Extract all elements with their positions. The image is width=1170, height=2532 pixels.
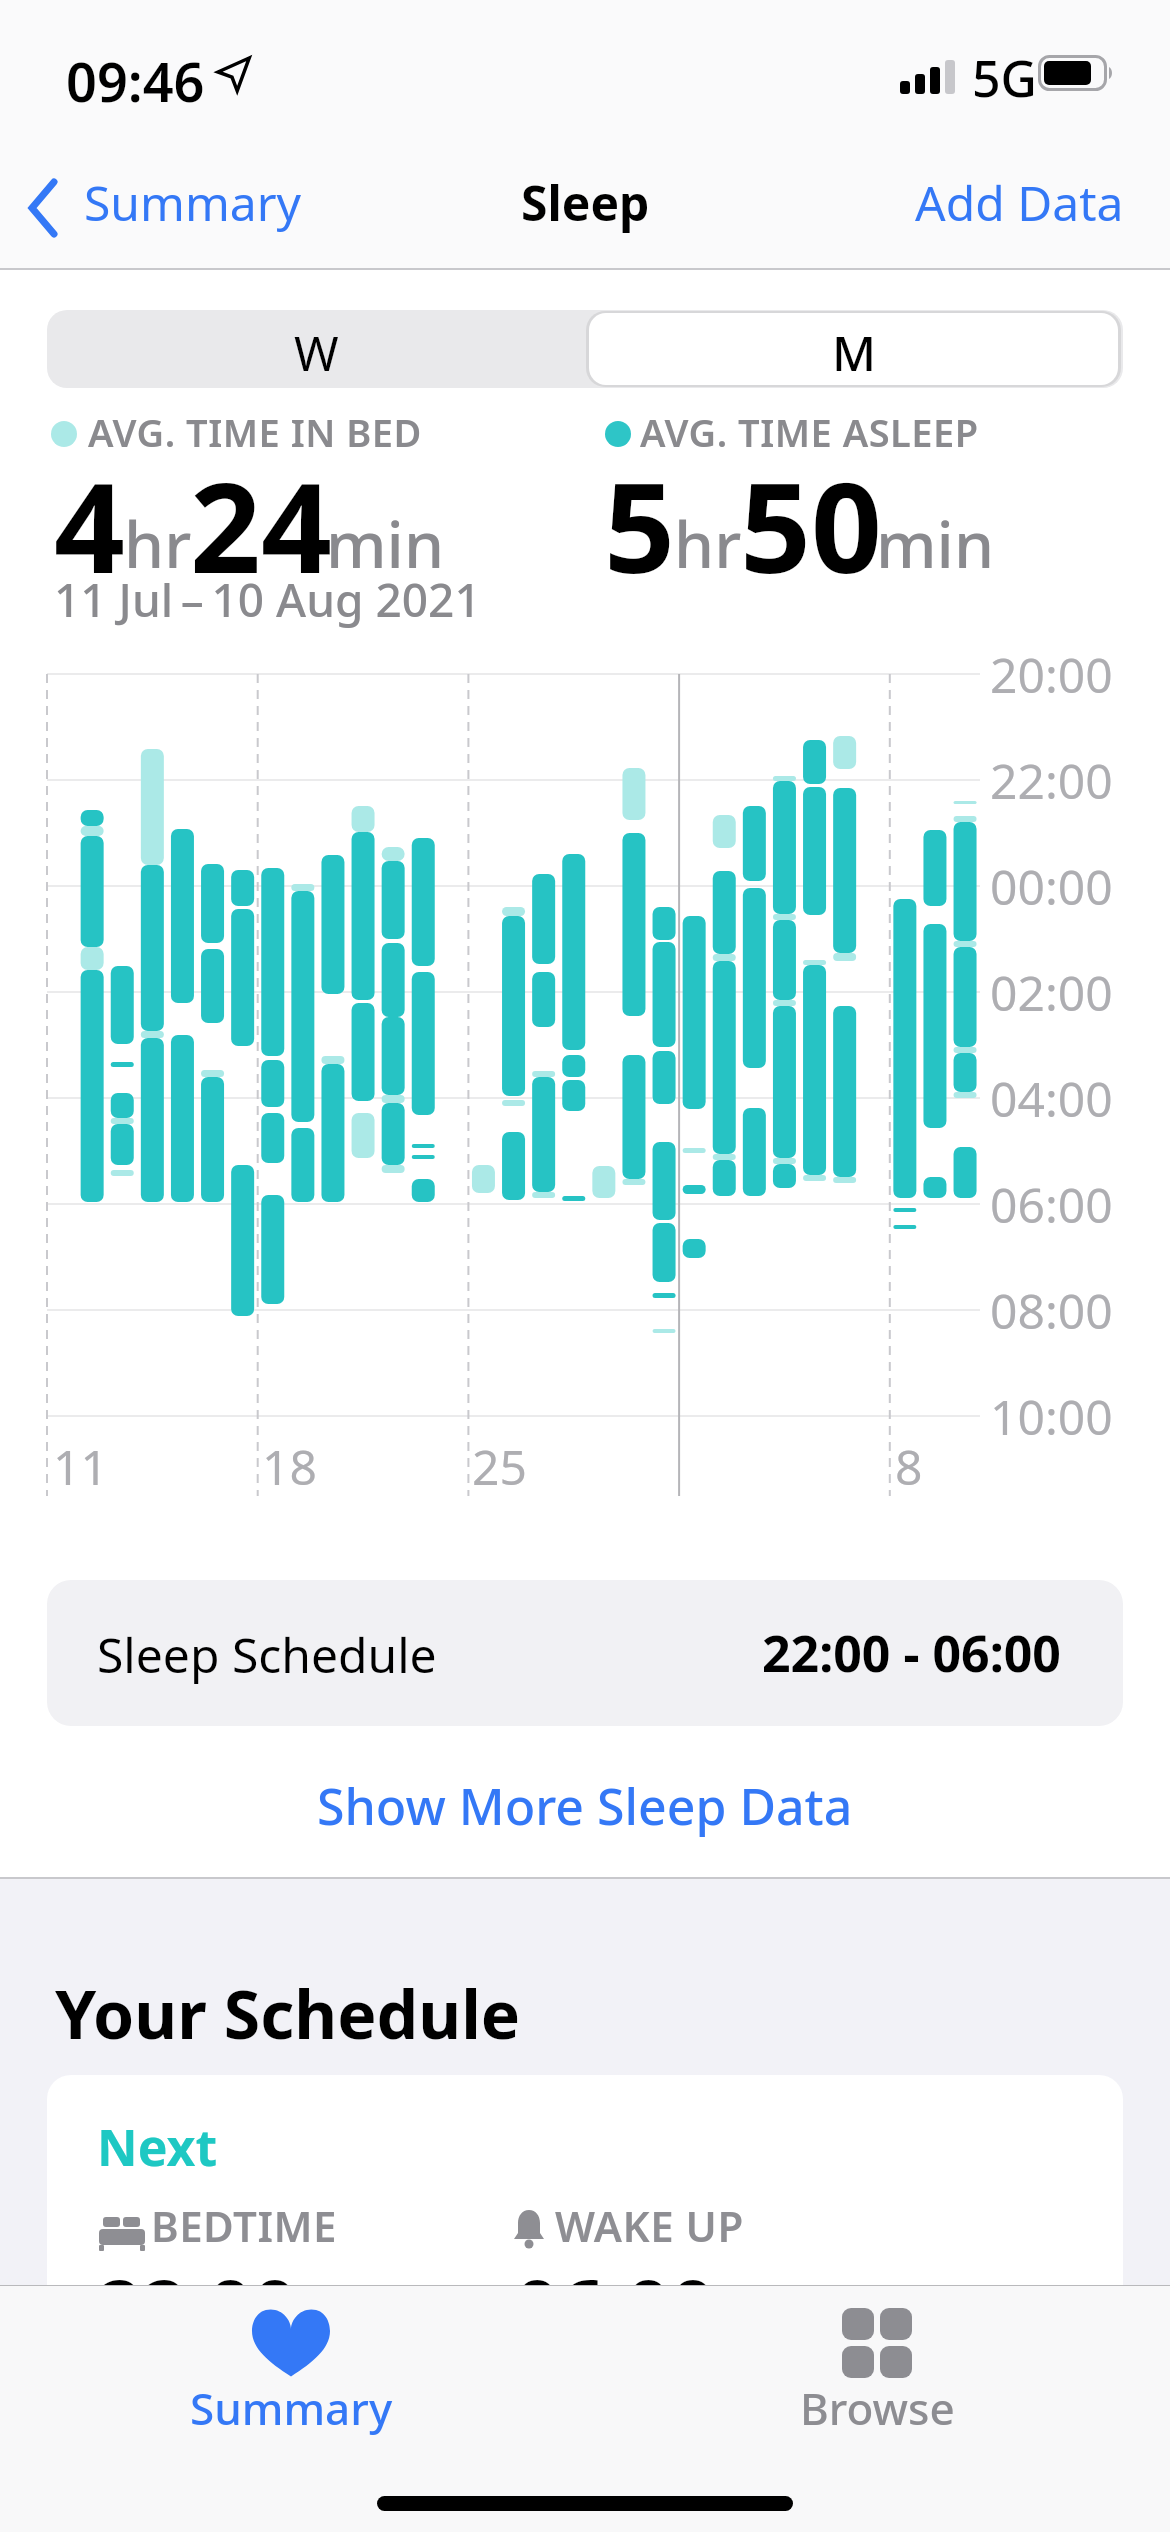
staticText: 4 bbox=[54, 440, 125, 609]
button[interactable] bbox=[47, 310, 585, 388]
staticText: 09:46 bbox=[66, 44, 205, 118]
staticText: W bbox=[294, 320, 339, 385]
staticText: 22:00 bbox=[97, 2254, 298, 2360]
staticText: WAKE UP bbox=[555, 2197, 744, 2254]
staticText: 04:00 bbox=[990, 1066, 1113, 1131]
staticText: 22:00 - 06:00 bbox=[762, 1619, 1061, 1687]
staticText: Summary bbox=[84, 170, 302, 235]
staticText: 11 Jul – 10 Aug 2021 bbox=[54, 568, 481, 631]
staticText: 20:00 bbox=[990, 642, 1113, 707]
staticText: Sleep bbox=[521, 170, 650, 235]
staticText: Next bbox=[97, 2113, 218, 2181]
button[interactable] bbox=[585, 310, 1123, 388]
staticText: AVG. TIME IN BED bbox=[88, 406, 422, 458]
button[interactable]: Summary bbox=[20, 170, 320, 250]
staticText: hr bbox=[124, 500, 192, 587]
staticText: 24 bbox=[190, 440, 332, 609]
staticText: 18 bbox=[262, 1434, 317, 1499]
staticText: 06:00 bbox=[990, 1172, 1113, 1237]
staticText: Your Schedule bbox=[55, 1968, 521, 2058]
button[interactable]: Next bbox=[47, 2075, 1123, 2532]
staticText: 00:00 bbox=[990, 854, 1113, 919]
button[interactable]: Add Data bbox=[900, 170, 1140, 250]
staticText: 5G bbox=[972, 44, 1037, 112]
staticText: 5 bbox=[604, 440, 675, 609]
staticText: Sleep Schedule bbox=[97, 1622, 437, 1687]
staticText: 08:00 bbox=[990, 1278, 1113, 1343]
staticText: 22:00 bbox=[990, 748, 1113, 813]
button[interactable]: Summary bbox=[170, 2292, 412, 2442]
staticText: 50 bbox=[740, 440, 882, 609]
staticText: M bbox=[832, 320, 877, 385]
staticText: 8 bbox=[895, 1434, 923, 1499]
staticText: 11 bbox=[53, 1434, 108, 1499]
staticText: Browse bbox=[800, 2378, 955, 2438]
staticText: BEDTIME bbox=[151, 2197, 337, 2254]
button[interactable]: Show More Sleep Data bbox=[285, 1766, 885, 1846]
staticText: min bbox=[326, 500, 445, 587]
button[interactable]: Browse bbox=[756, 2292, 998, 2442]
staticText: hr bbox=[674, 500, 742, 587]
staticText: Add Data bbox=[915, 170, 1124, 235]
staticText: 25 bbox=[472, 1434, 527, 1499]
staticText: 02:00 bbox=[990, 960, 1113, 1025]
staticText: 10:00 bbox=[990, 1384, 1113, 1449]
staticText: min bbox=[876, 500, 995, 587]
staticText: Show More Sleep Data bbox=[317, 1772, 853, 1840]
staticText: AVG. TIME ASLEEP bbox=[640, 406, 979, 458]
button[interactable]: Sleep Schedule bbox=[47, 1580, 1123, 1726]
staticText: 06:00 bbox=[515, 2254, 716, 2360]
staticText: Summary bbox=[190, 2378, 393, 2438]
